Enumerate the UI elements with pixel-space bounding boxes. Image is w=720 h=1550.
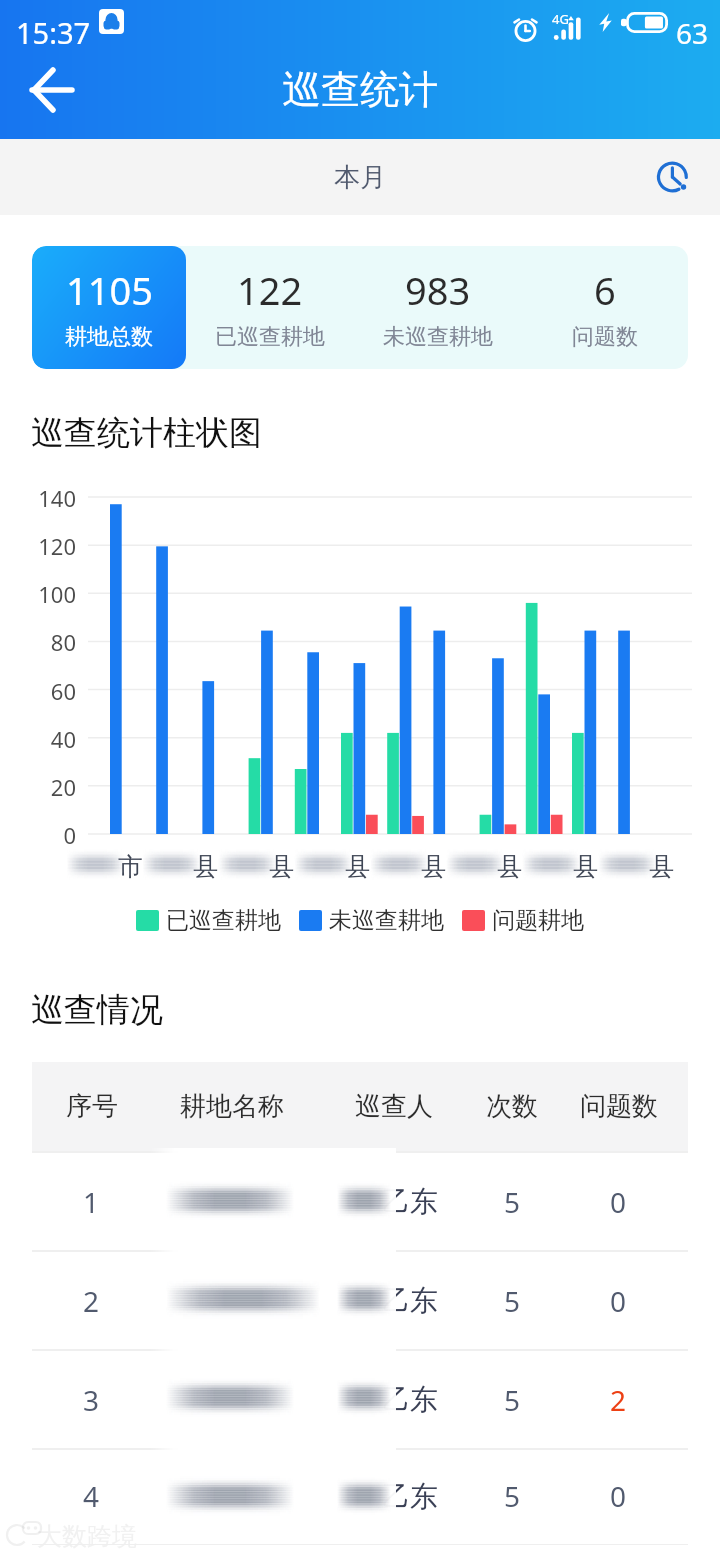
button[interactable]: 已巡查耕地: [136, 906, 281, 935]
staticText: 0: [610, 1282, 627, 1320]
staticText: 140: [24, 483, 76, 513]
staticText: 巡查人: [355, 1090, 433, 1123]
staticText: 巡查统计: [282, 65, 438, 114]
staticText: 5: [504, 1381, 521, 1419]
staticText: 市: [118, 851, 143, 882]
staticText: 1: [83, 1183, 100, 1221]
staticText: 县: [573, 851, 598, 882]
staticText: 983: [405, 264, 471, 316]
button[interactable]: 3: [32, 1351, 688, 1448]
staticText: 序号: [66, 1090, 118, 1123]
staticText: 县: [497, 851, 522, 882]
staticText: 3: [83, 1381, 100, 1419]
staticText: 县: [345, 851, 370, 882]
button[interactable]: 2: [32, 1252, 688, 1349]
staticText: 大数跨境: [37, 1521, 137, 1550]
button[interactable]: 本月: [334, 161, 386, 194]
button[interactable]: 1105: [32, 246, 186, 369]
staticText: 80: [24, 627, 76, 657]
staticText: 乙东: [382, 1479, 438, 1514]
staticText: 60: [24, 676, 76, 706]
staticText: 问题耕地: [492, 906, 584, 935]
staticText: 0: [610, 1183, 627, 1221]
staticText: 耕地名称: [180, 1090, 284, 1123]
staticText: 5: [504, 1282, 521, 1320]
staticText: 15:37: [16, 13, 91, 52]
staticText: 巡查统计柱状图: [31, 412, 262, 454]
staticText: 1105: [66, 264, 153, 316]
button[interactable]: 122: [186, 246, 354, 369]
button[interactable]: History: [652, 158, 693, 199]
staticText: 县: [269, 851, 294, 882]
staticText: 5: [504, 1477, 521, 1515]
staticText: 63: [676, 14, 709, 52]
staticText: 乙东: [382, 1382, 438, 1417]
staticText: 4G: [552, 10, 569, 28]
staticText: 120: [24, 531, 76, 561]
staticText: 县: [193, 851, 218, 882]
staticText: 次数: [486, 1090, 538, 1123]
staticText: 100: [24, 579, 76, 609]
staticText: 乙东: [382, 1184, 438, 1219]
staticText: 2: [610, 1381, 627, 1419]
button[interactable]: Back: [26, 64, 78, 116]
staticText: 问题数: [572, 323, 638, 351]
staticText: 已巡查耕地: [166, 906, 281, 935]
staticText: 县: [649, 851, 674, 882]
button[interactable]: 1: [32, 1153, 688, 1250]
button[interactable]: 问题耕地: [462, 906, 584, 935]
staticText: 乙东: [382, 1283, 438, 1318]
staticText: 4: [83, 1477, 100, 1515]
button[interactable]: 未巡查耕地: [299, 906, 444, 935]
staticText: 县: [421, 851, 446, 882]
button[interactable]: 4: [32, 1450, 688, 1542]
staticText: 0: [610, 1477, 627, 1515]
staticText: 耕地总数: [65, 323, 153, 351]
staticText: 20: [24, 772, 76, 802]
staticText: 0: [24, 820, 76, 850]
staticText: 已巡查耕地: [215, 323, 325, 351]
staticText: 未巡查耕地: [383, 323, 493, 351]
staticText: 问题数: [580, 1090, 658, 1123]
staticText: 122: [237, 264, 303, 316]
staticText: 6: [594, 264, 616, 316]
staticText: 巡查情况: [31, 989, 163, 1031]
staticText: 未巡查耕地: [329, 906, 444, 935]
staticText: 2: [83, 1282, 100, 1320]
button[interactable]: 6: [521, 246, 688, 369]
staticText: 5: [504, 1183, 521, 1221]
staticText: 40: [24, 724, 76, 754]
button[interactable]: 983: [354, 246, 521, 369]
